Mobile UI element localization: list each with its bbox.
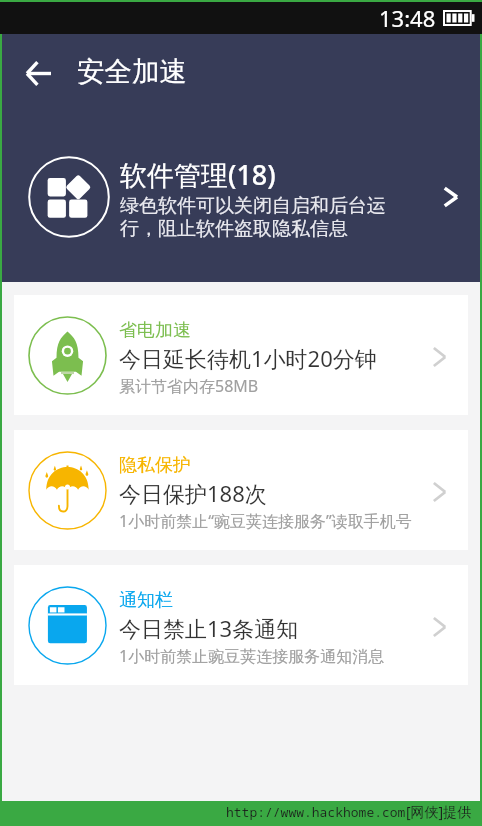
staticText: 绿色软件可以关闭自启和后台运行，阻止软件盗取隐私信息 [120, 194, 388, 241]
staticText: 安全加速 [77, 55, 187, 90]
button[interactable]: 通知栏 [14, 565, 468, 685]
button[interactable]: Back [10, 45, 66, 101]
staticText: 通知栏 [119, 589, 173, 612]
staticText: 1小时前禁止“豌豆荚连接服务”读取手机号 [119, 510, 412, 532]
staticText: http://www.hackhome.com [226, 803, 406, 821]
staticText: 1小时前禁止豌豆荚连接服务通知消息 [119, 645, 385, 667]
staticText: 13:48 [379, 3, 436, 33]
staticText: [网侠]提供 [406, 802, 472, 821]
staticText: 隐私保护 [119, 454, 191, 477]
button[interactable]: 软件管理(18) [2, 112, 480, 282]
staticText: 省电加速 [119, 319, 191, 342]
staticText: 今日保护188次 [119, 478, 267, 508]
staticText: 累计节省内存58MB [119, 375, 259, 397]
button[interactable]: 省电加速 [14, 295, 468, 415]
staticText: 今日禁止13条通知 [119, 613, 299, 643]
staticText: 软件管理(18) [120, 156, 276, 193]
button[interactable]: 隐私保护 [14, 430, 468, 550]
staticText: 今日延长待机1小时20分钟 [119, 343, 377, 373]
